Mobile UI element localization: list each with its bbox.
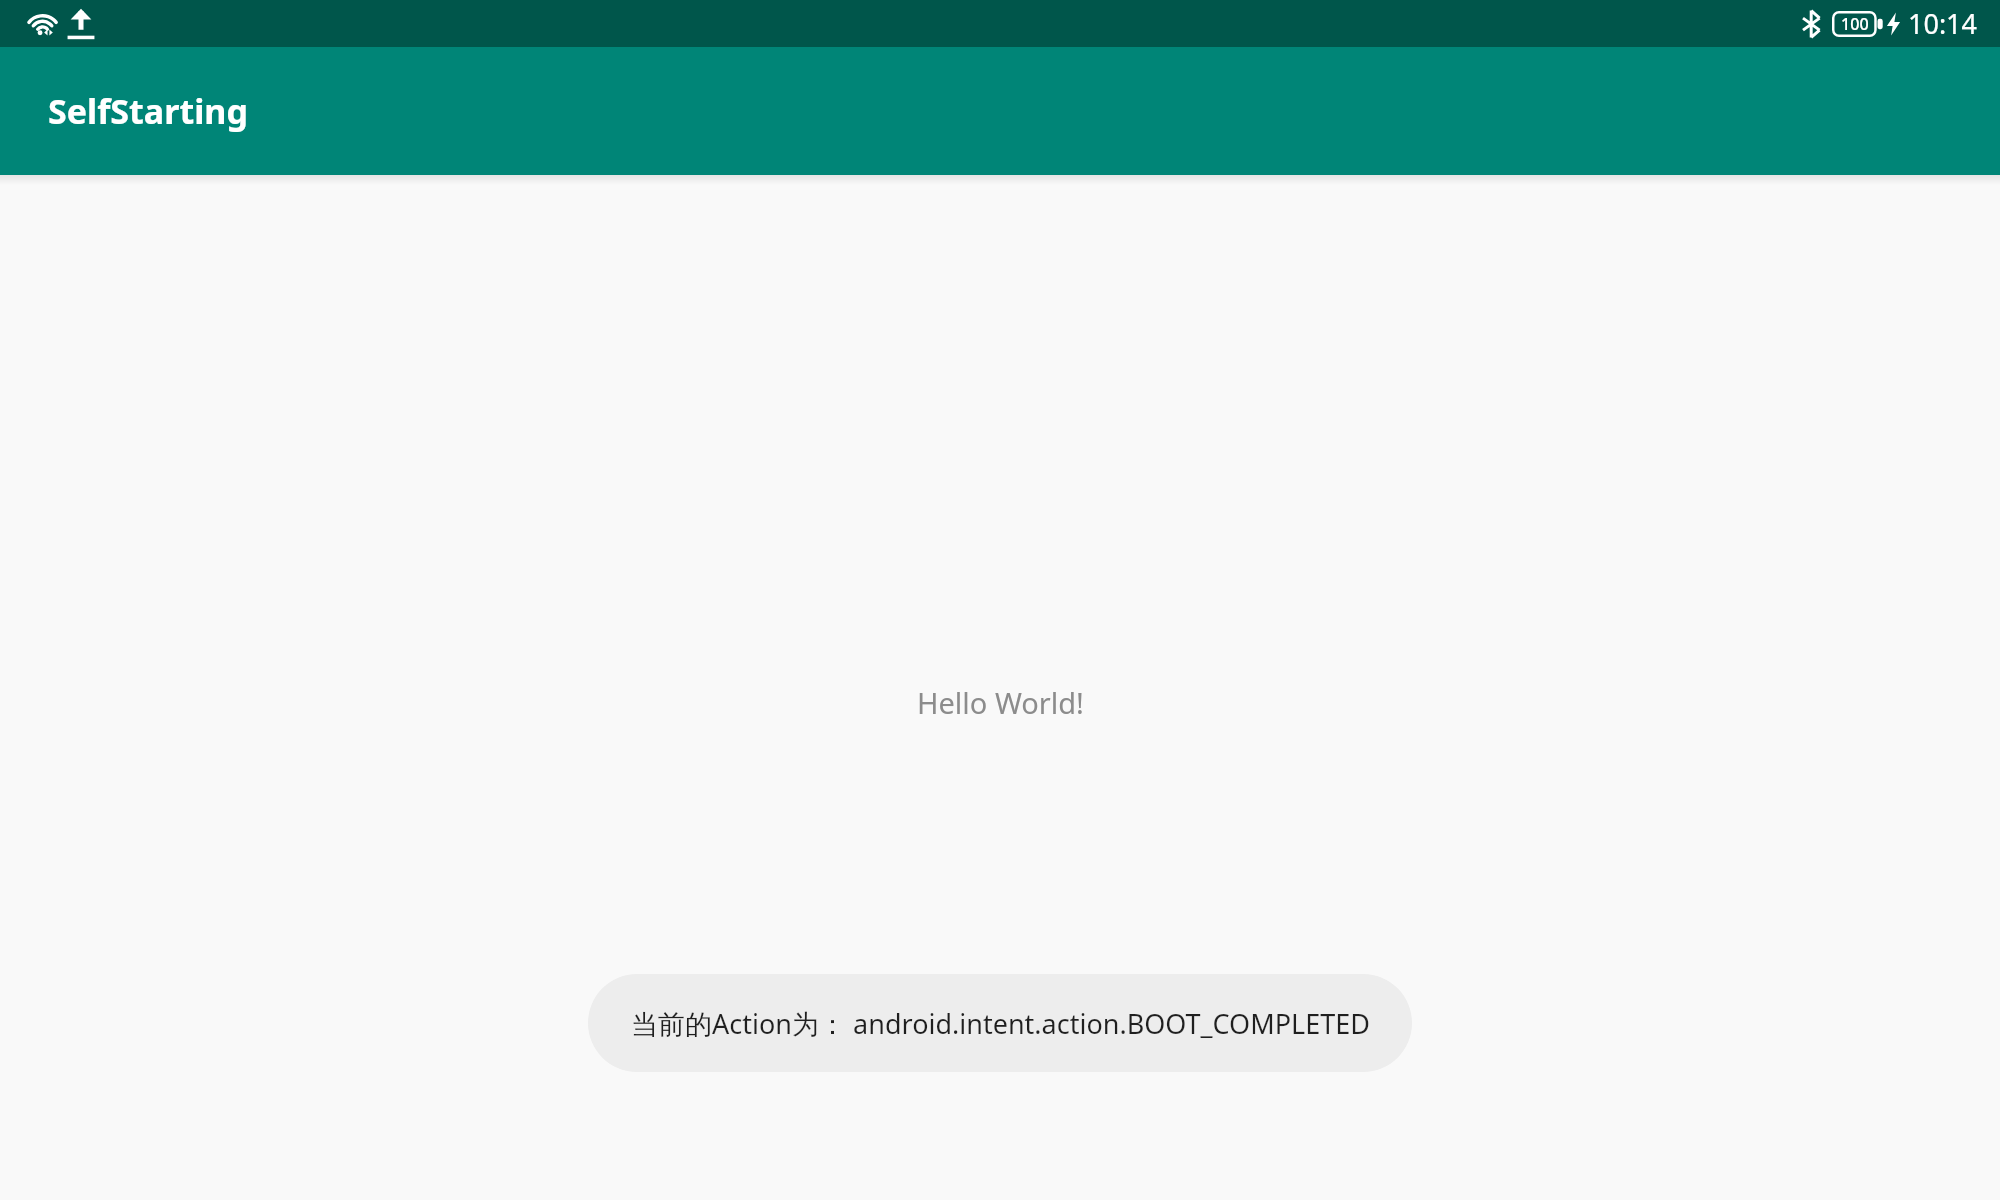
other: Bluetooth [1802,10,1822,38]
staticText: Hello World! [917,683,1084,722]
other: Wi-Fi [26,9,62,39]
staticText: 当前的Action为： android.intent.action.BOOT_C… [631,1005,1370,1042]
staticText: 10:14 [1908,5,1978,42]
other: Upload [67,8,95,40]
staticText: 100 [1841,13,1869,35]
staticText: SelfStarting [48,88,248,134]
button[interactable]: 当前的Action为： android.intent.action.BOOT_C… [588,974,1412,1072]
